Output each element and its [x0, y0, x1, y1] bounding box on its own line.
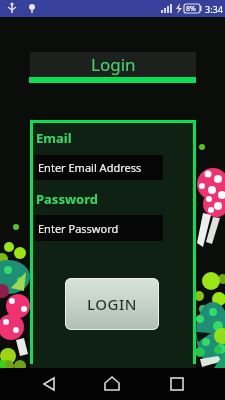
button[interactable] — [161, 372, 191, 398]
staticText: Email — [36, 129, 72, 147]
staticText: 8% — [186, 4, 196, 14]
staticText: Enter Email Address — [38, 160, 142, 175]
button[interactable]: Enter Email Address — [34, 155, 163, 180]
staticText: 3:34 — [205, 3, 223, 15]
staticText: Login — [91, 53, 136, 76]
staticText: Password — [36, 190, 98, 208]
button[interactable]: Enter Password — [34, 215, 163, 241]
button[interactable] — [38, 372, 68, 398]
button[interactable] — [97, 372, 127, 398]
staticText: LOGIN — [87, 294, 137, 314]
staticText: Enter Password — [38, 221, 119, 236]
button[interactable]: LOGIN — [65, 278, 159, 330]
